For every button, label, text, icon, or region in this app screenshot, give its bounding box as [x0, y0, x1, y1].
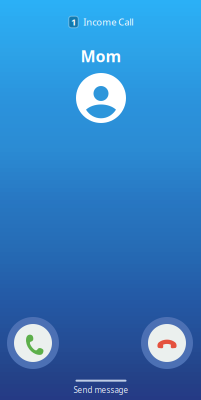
staticText: Mom: [80, 45, 121, 67]
staticText: Income Call: [83, 16, 133, 28]
staticText: 1: [71, 16, 76, 28]
staticText: Send message: [73, 385, 128, 395]
button[interactable]: Answer call: [7, 317, 59, 369]
button[interactable]: Decline call: [141, 317, 193, 369]
button[interactable]: Send message: [36, 374, 166, 400]
